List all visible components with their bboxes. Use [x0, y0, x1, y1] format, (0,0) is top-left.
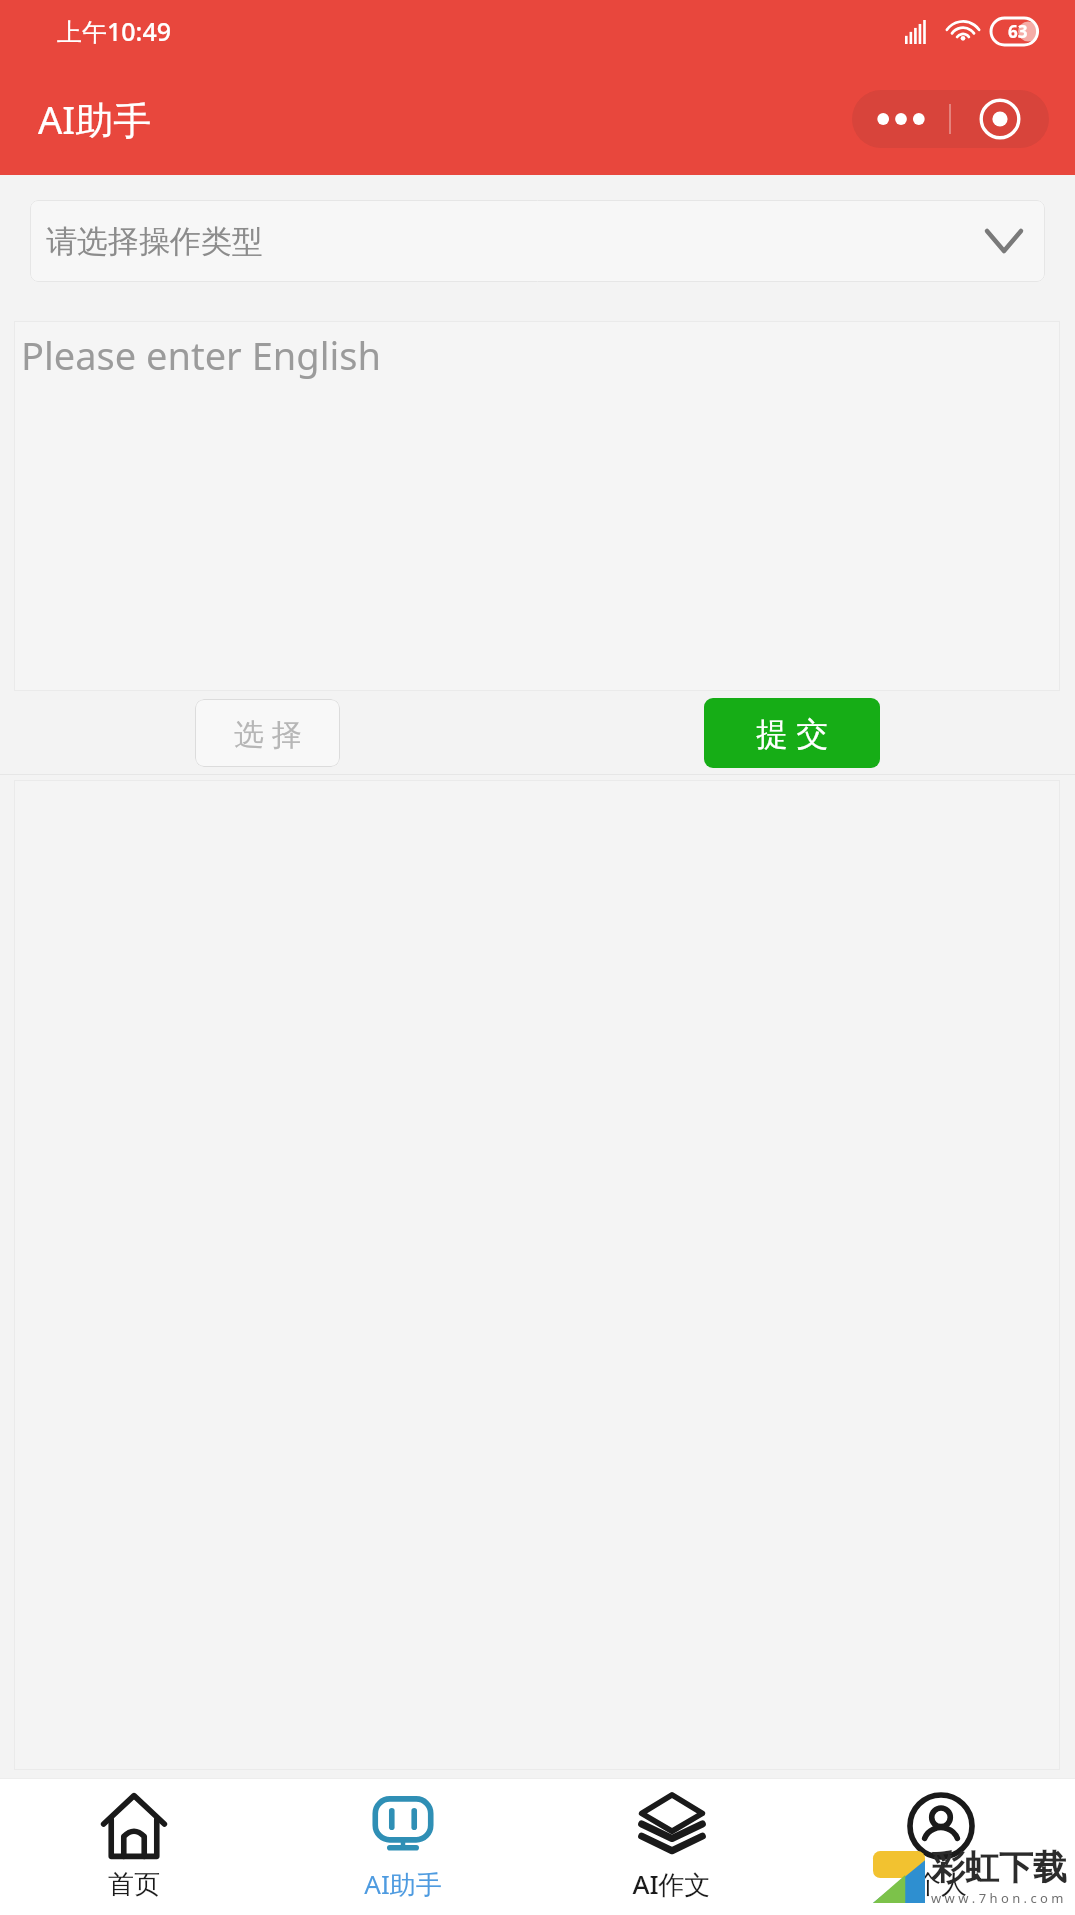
staticText: 个人: [915, 1868, 967, 1901]
button[interactable]: 选 择: [195, 699, 340, 767]
staticText: Please enter English: [21, 329, 381, 381]
staticText: 彩虹下载: [931, 1846, 1067, 1889]
button[interactable]: More: [852, 90, 949, 148]
staticText: AI作文: [632, 1866, 711, 1902]
button[interactable]: AI作文: [632, 1778, 711, 1915]
button[interactable]: Close: [951, 90, 1049, 148]
staticText: 选 择: [234, 713, 302, 754]
staticText: 首页: [108, 1868, 160, 1901]
staticText: AI助手: [364, 1866, 442, 1902]
staticText: 上午10:49: [57, 14, 172, 48]
button[interactable]: 首页: [101, 1778, 167, 1915]
button[interactable]: 个人: [908, 1778, 974, 1915]
staticText: 63: [1008, 20, 1028, 43]
staticText: 请选择操作类型: [46, 222, 263, 261]
button[interactable]: 提 交: [704, 698, 880, 768]
staticText: w w w . 7 h o n . c o m: [931, 1889, 1064, 1907]
button[interactable]: Please enter English: [14, 321, 1060, 691]
staticText: 提 交: [756, 711, 829, 755]
button[interactable]: 请选择操作类型: [30, 200, 1045, 282]
button[interactable]: AI助手: [364, 1778, 442, 1915]
staticText: AI助手: [38, 93, 152, 145]
